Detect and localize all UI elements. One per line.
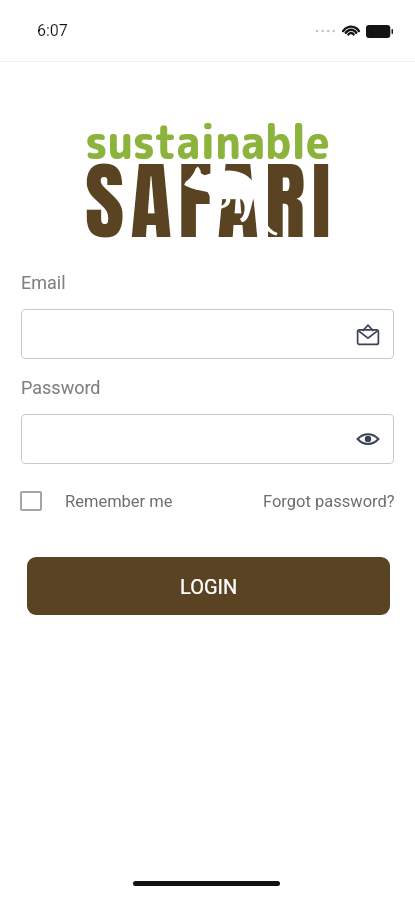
staticText: SAFARI [85, 137, 337, 265]
button[interactable]: Forgot password? [263, 492, 395, 511]
staticText: sustainable [85, 108, 330, 174]
staticText: 6:07 [37, 21, 68, 40]
staticText: Email [21, 272, 66, 293]
button[interactable]: Email [21, 309, 394, 359]
staticText: Remember me [65, 492, 173, 511]
button[interactable]: Remember me [20, 491, 173, 511]
staticText: LOGIN [180, 575, 238, 598]
button[interactable]: Email [355, 321, 381, 347]
button[interactable]: Show password [21, 414, 394, 464]
button[interactable]: LOGIN [27, 557, 390, 615]
button[interactable]: Show password [355, 426, 381, 452]
staticText: Password [21, 377, 101, 398]
